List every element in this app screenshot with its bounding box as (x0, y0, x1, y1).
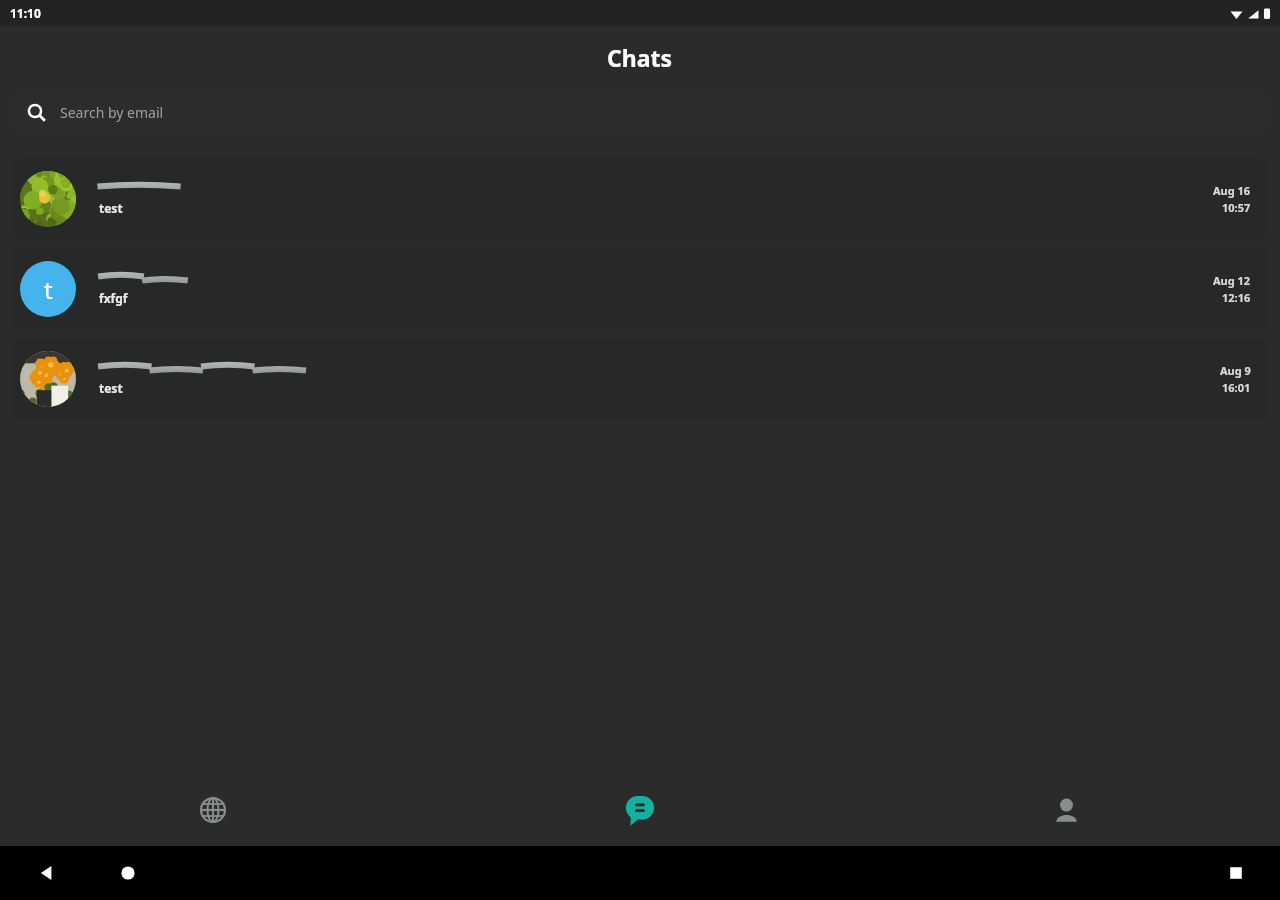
staticText: 10:57 (1222, 200, 1251, 215)
staticText: 12:16 (1222, 290, 1251, 305)
button[interactable]: test (11, 338, 1269, 419)
button[interactable]: Profile (853, 774, 1280, 846)
staticText: Aug 12 (1213, 273, 1251, 288)
button[interactable]: Home (117, 862, 139, 884)
staticText: fxfgf (99, 290, 128, 306)
button[interactable]: Explore (0, 774, 426, 846)
staticText: Chats (607, 42, 673, 73)
staticText: 11:10 (10, 5, 41, 21)
staticText: Search by email (60, 103, 164, 122)
button[interactable]: Search by email (11, 88, 1269, 136)
button[interactable]: Recents (1226, 863, 1246, 883)
staticText: Aug 16 (1213, 183, 1251, 198)
button[interactable]: Back (36, 862, 58, 884)
staticText: test (99, 380, 123, 396)
button[interactable]: Chats (426, 774, 853, 846)
button[interactable]: t (11, 248, 1269, 329)
staticText: t (44, 273, 53, 306)
staticText: 16:01 (1222, 380, 1251, 395)
staticText: Aug 9 (1220, 363, 1251, 378)
staticText: test (99, 200, 123, 216)
button[interactable]: test (11, 158, 1269, 239)
